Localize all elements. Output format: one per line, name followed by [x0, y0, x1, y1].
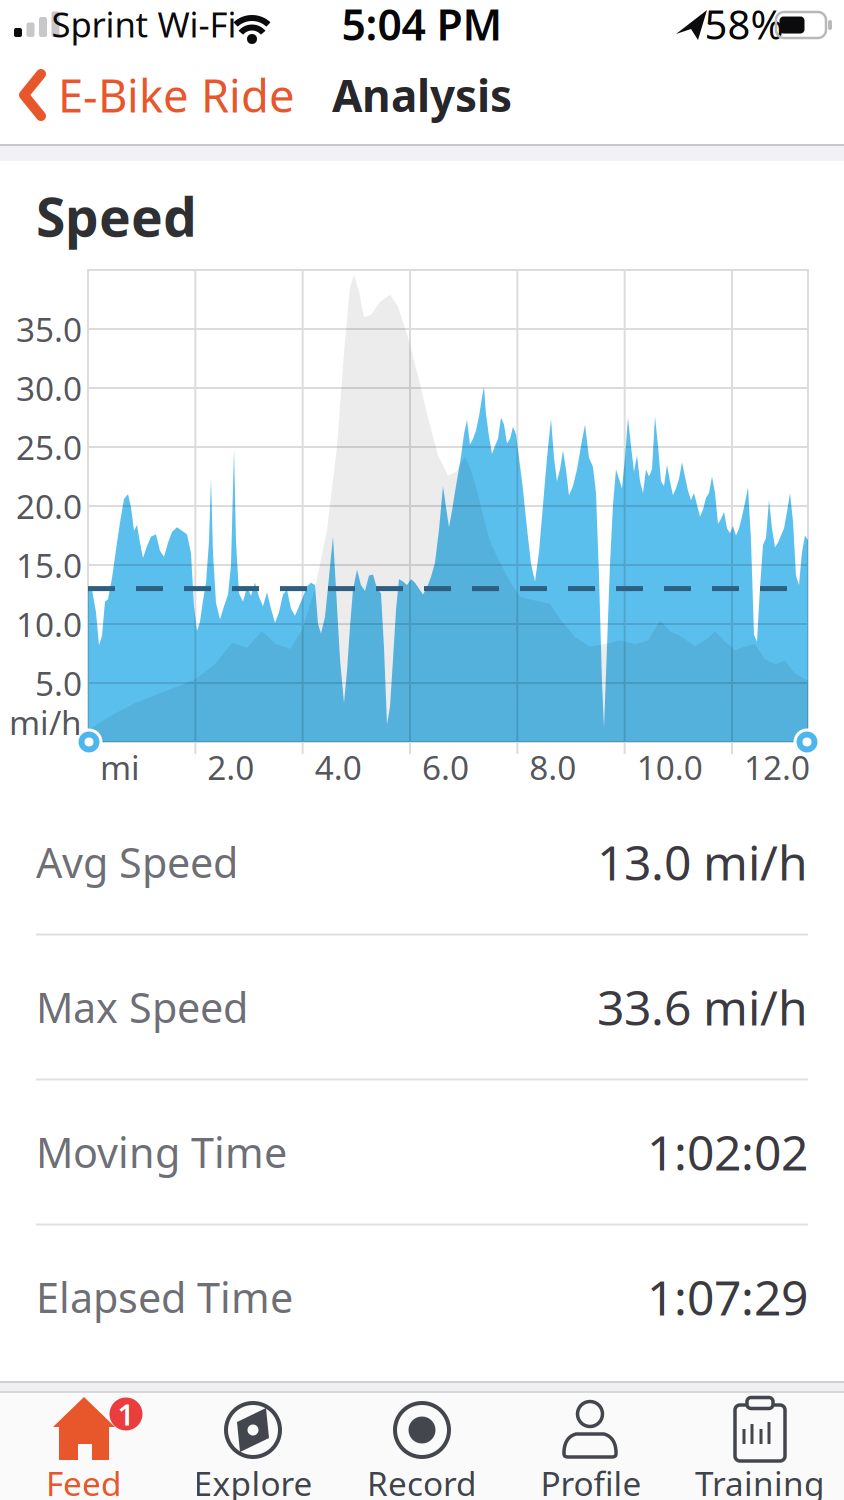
staticText: 1:07:29 [647, 1265, 808, 1329]
button[interactable]: Record [367, 1392, 477, 1500]
staticText: 33.6 mi/h [597, 975, 808, 1039]
staticText: 5:04 PM [341, 0, 502, 52]
staticText: E-Bike Ride [58, 65, 295, 125]
staticText: Sprint Wi-Fi [51, 1, 236, 47]
staticText: 13.0 mi/h [597, 830, 808, 894]
staticText: 35.0 [16, 307, 82, 351]
staticText: 20.0 [16, 484, 82, 528]
staticText: Max Speed [36, 980, 248, 1034]
staticText: 30.0 [16, 366, 82, 410]
staticText: 10.0 [637, 745, 703, 789]
staticText: Avg Speed [36, 835, 238, 889]
staticText: 2.0 [207, 745, 254, 789]
staticText: Explore [193, 1461, 312, 1500]
staticText: Moving Time [36, 1125, 287, 1179]
staticText: 1 [117, 1394, 134, 1433]
staticText: mi/h [9, 700, 82, 744]
staticText: 5.0 [35, 661, 82, 705]
staticText: 4.0 [315, 745, 362, 789]
staticText: Training [695, 1461, 825, 1500]
staticText: Analysis [332, 66, 512, 124]
staticText: Feed [46, 1461, 122, 1500]
staticText: 10.0 [16, 602, 82, 646]
staticText: 25.0 [16, 425, 82, 469]
button[interactable]: Profile [536, 1392, 646, 1500]
staticText: 8.0 [529, 745, 576, 789]
staticText: Record [367, 1461, 477, 1500]
staticText: 6.0 [422, 745, 469, 789]
staticText: Profile [540, 1461, 641, 1500]
button[interactable]: Training [705, 1392, 815, 1500]
staticText: 15.0 [16, 543, 82, 587]
staticText: 58% [704, 0, 783, 50]
button[interactable]: 1 [29, 1392, 139, 1500]
staticText: Speed [36, 181, 197, 251]
staticText: mi [100, 745, 140, 789]
button[interactable]: E-Bike Ride [20, 50, 380, 139]
button[interactable]: Explore [198, 1392, 308, 1500]
staticText: Elapsed Time [36, 1270, 293, 1324]
staticText: 12.0 [744, 745, 810, 789]
staticText: 1:02:02 [647, 1120, 808, 1184]
